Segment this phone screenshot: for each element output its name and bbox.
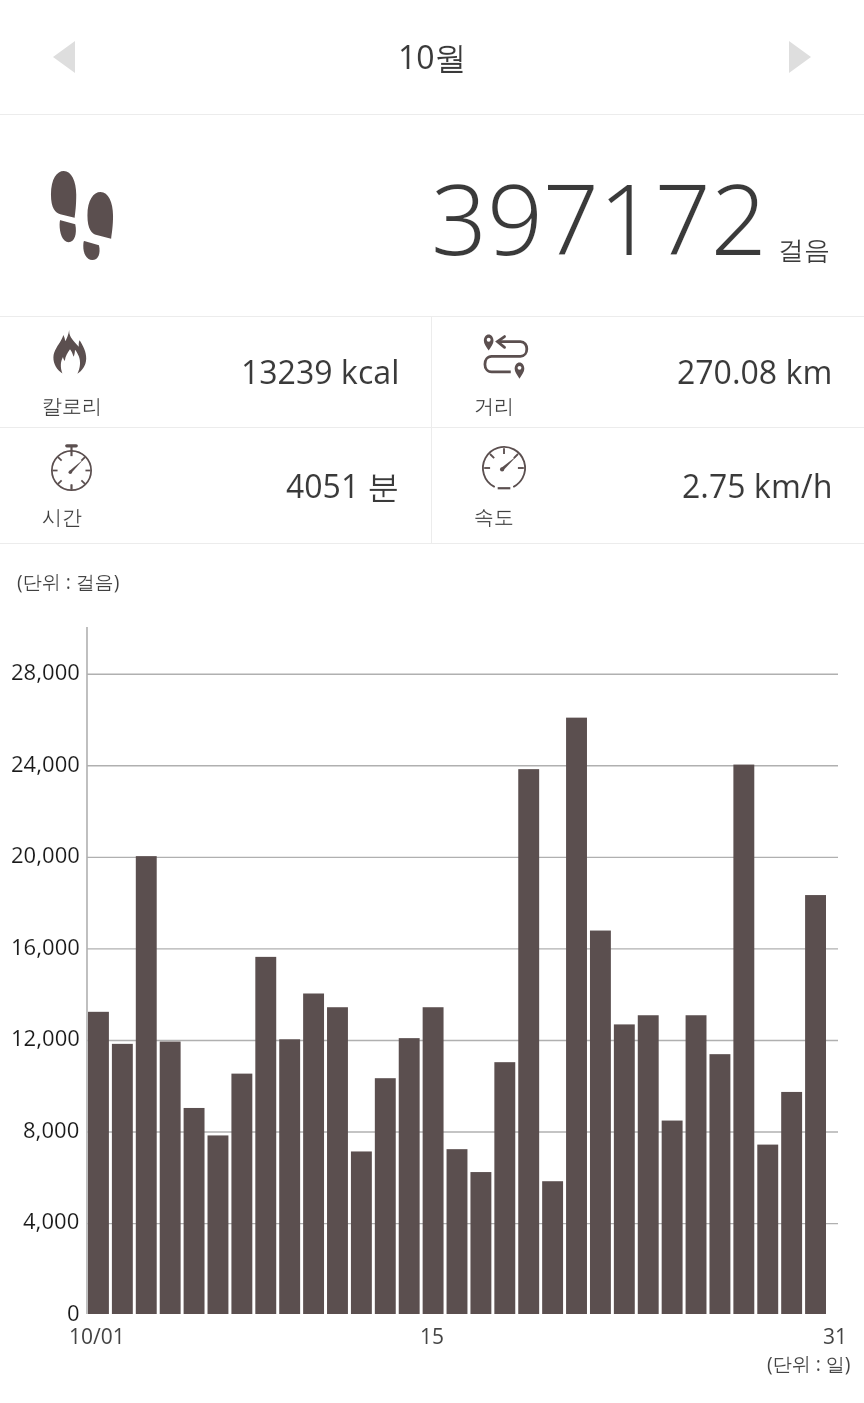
staticText: 칼로리 bbox=[42, 394, 102, 419]
staticText: (단위 : 일) bbox=[767, 1351, 851, 1377]
staticText: 10/01 bbox=[69, 1322, 125, 1351]
staticText: (단위 : 걸음) bbox=[17, 569, 120, 595]
staticText: 걸음 bbox=[778, 234, 830, 267]
staticText: 시간 bbox=[42, 505, 82, 530]
staticText: 28,000 bbox=[11, 656, 80, 686]
staticText: 15 bbox=[420, 1322, 445, 1351]
staticText: 270.08 km bbox=[677, 350, 833, 394]
button[interactable]: 속도 bbox=[432, 428, 864, 543]
button[interactable]: 시간 bbox=[0, 428, 431, 543]
button[interactable]: 칼로리 bbox=[0, 317, 431, 427]
staticText: 12,000 bbox=[11, 1022, 80, 1052]
staticText: 4051 분 bbox=[286, 464, 400, 508]
staticText: 24,000 bbox=[11, 748, 80, 778]
button[interactable]: Previous month bbox=[0, 0, 128, 114]
staticText: 0 bbox=[67, 1297, 80, 1327]
staticText: 거리 bbox=[474, 394, 514, 419]
staticText: 397172 bbox=[431, 150, 767, 283]
staticText: 20,000 bbox=[11, 839, 80, 869]
staticText: 8,000 bbox=[23, 1114, 80, 1144]
staticText: 10월 bbox=[398, 35, 467, 79]
staticText: 16,000 bbox=[11, 931, 80, 961]
staticText: 속도 bbox=[474, 505, 514, 530]
staticText: 13239 kcal bbox=[241, 350, 400, 394]
staticText: 31 bbox=[823, 1322, 848, 1351]
staticText: 2.75 km/h bbox=[682, 464, 833, 508]
button[interactable]: Next month bbox=[736, 0, 864, 114]
staticText: 4,000 bbox=[23, 1205, 80, 1235]
button[interactable]: 거리 bbox=[432, 317, 864, 427]
